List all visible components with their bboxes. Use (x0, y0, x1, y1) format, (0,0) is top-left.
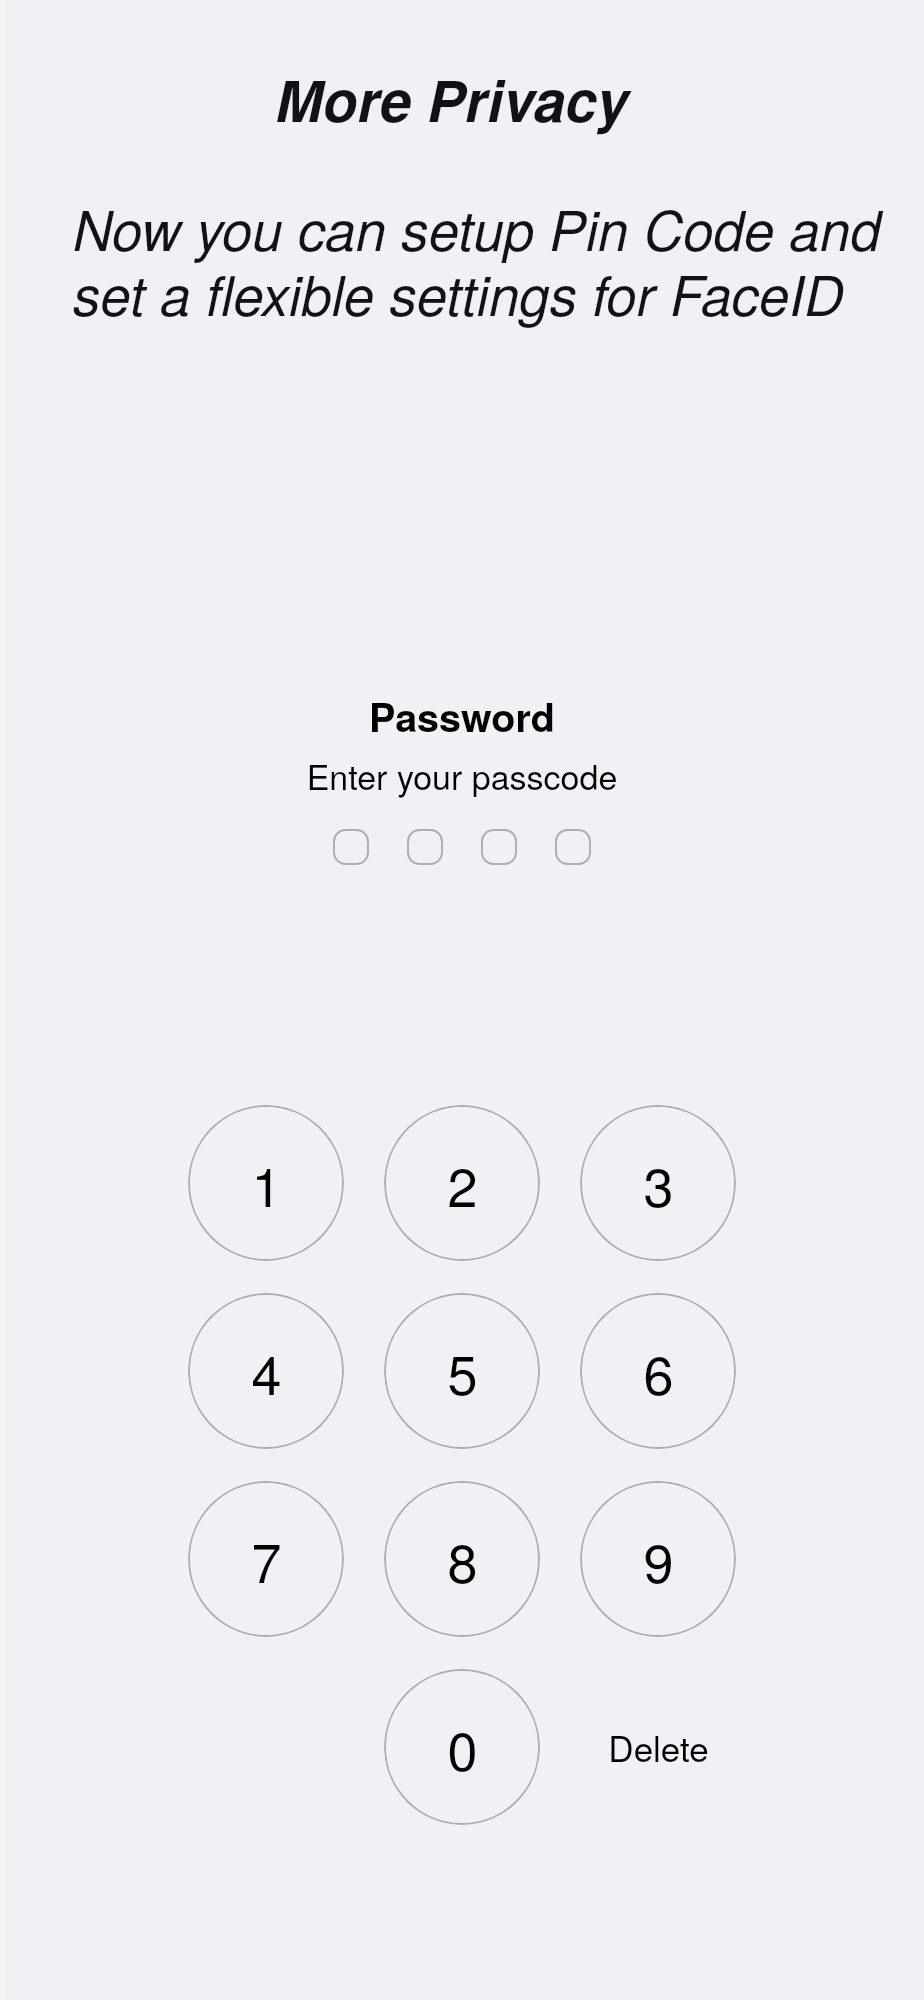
staticText: 1 (251, 1145, 282, 1222)
staticText: Delete (608, 1722, 709, 1772)
button[interactable]: 8 (384, 1481, 540, 1637)
staticText: 6 (643, 1333, 674, 1410)
staticText: 3 (643, 1145, 674, 1222)
staticText: Password (0, 688, 924, 745)
staticText: 7 (251, 1521, 282, 1598)
button[interactable]: 2 (384, 1105, 540, 1261)
button[interactable]: 4 (188, 1293, 344, 1449)
button[interactable]: 6 (580, 1293, 736, 1449)
staticText: 0 (447, 1709, 478, 1786)
staticText: 5 (447, 1333, 478, 1410)
staticText: Enter your passcode (0, 751, 924, 800)
staticText: 2 (447, 1145, 478, 1222)
button[interactable]: 9 (580, 1481, 736, 1637)
button[interactable]: 3 (580, 1105, 736, 1261)
button[interactable]: 0 (384, 1669, 540, 1825)
button[interactable]: 5 (384, 1293, 540, 1449)
staticText: More Privacy (0, 59, 914, 140)
staticText: 9 (643, 1521, 674, 1598)
button[interactable]: 7 (188, 1481, 344, 1637)
button[interactable]: Delete last digit (580, 1669, 736, 1825)
staticText: 8 (447, 1521, 478, 1598)
button[interactable]: 1 (188, 1105, 344, 1261)
staticText: Now you can setup Pin Code and set a fle… (73, 189, 881, 331)
staticText: 4 (251, 1333, 282, 1410)
